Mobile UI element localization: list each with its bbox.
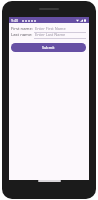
button[interactable]: Submit (11, 43, 86, 52)
staticText: Enter First Name (35, 26, 66, 31)
staticText: Enter Last Name (35, 32, 66, 37)
staticText: 9:40 (11, 18, 19, 23)
staticText: Last name: (11, 32, 33, 38)
staticText: First name: (11, 26, 33, 32)
staticText: Submit (42, 45, 55, 50)
